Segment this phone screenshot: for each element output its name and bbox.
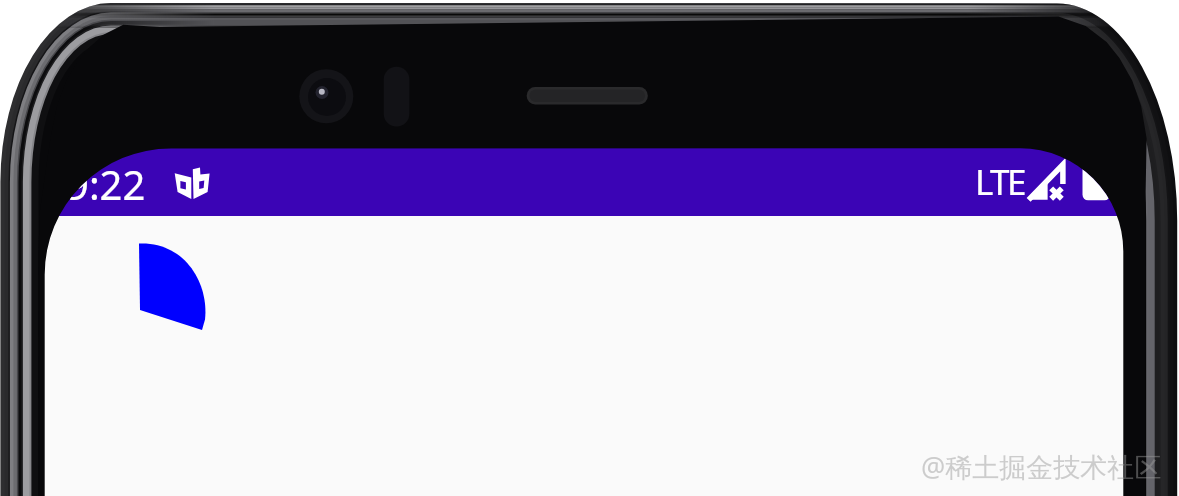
staticText: @稀土掘金技术社区 — [921, 448, 1162, 485]
other: Battery — [1080, 160, 1114, 202]
staticText: 9:22 — [66, 157, 146, 211]
other: No cellular signal — [1026, 162, 1066, 202]
staticText: LTE — [975, 158, 1024, 206]
button[interactable]: Juejin notification — [174, 166, 212, 201]
